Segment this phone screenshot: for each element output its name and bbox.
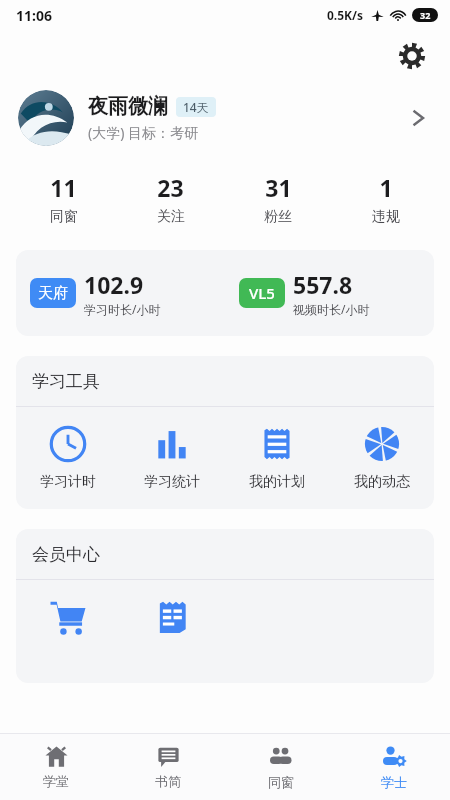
- button[interactable]: 11: [10, 168, 117, 230]
- button[interactable]: 学士: [337, 734, 450, 800]
- button[interactable]: 同窗: [224, 734, 337, 800]
- staticText: 学习计时: [40, 473, 96, 491]
- button[interactable]: 书简: [112, 734, 224, 800]
- button[interactable]: 学习统计: [120, 423, 224, 493]
- button[interactable]: 学堂: [0, 734, 112, 800]
- staticText: 学堂: [43, 773, 69, 789]
- button[interactable]: [16, 596, 120, 667]
- staticText: 关注: [157, 208, 185, 226]
- staticText: 0.5K/s: [327, 7, 364, 23]
- button[interactable]: 我的动态: [329, 423, 434, 493]
- button[interactable]: 学习计时: [16, 423, 120, 493]
- staticText: 14天: [183, 99, 209, 115]
- staticText: 学习工具: [32, 371, 100, 392]
- staticText: 学习时长/小时: [84, 301, 161, 317]
- button[interactable]: 夜雨微澜: [0, 82, 450, 154]
- staticText: 夜雨微澜: [88, 94, 168, 119]
- button[interactable]: 天府: [16, 250, 225, 336]
- staticText: 11: [50, 172, 77, 203]
- other: Open profile: [400, 100, 436, 136]
- staticText: (大学) 目标：考研: [88, 123, 199, 142]
- staticText: 学习统计: [144, 473, 200, 491]
- staticText: 我的计划: [249, 473, 305, 491]
- staticText: 粉丝: [264, 208, 292, 226]
- staticText: 31: [265, 172, 292, 203]
- staticText: 32: [420, 9, 431, 21]
- button[interactable]: [120, 596, 224, 667]
- button[interactable]: 我的计划: [224, 423, 329, 493]
- staticText: 会员中心: [32, 544, 100, 565]
- staticText: 学士: [381, 774, 407, 790]
- button[interactable]: 23: [117, 168, 224, 230]
- staticText: 天府: [38, 284, 68, 303]
- staticText: 102.9: [84, 269, 144, 300]
- staticText: 23: [157, 172, 184, 203]
- button[interactable]: VL5: [225, 250, 434, 336]
- staticText: 同窗: [268, 774, 294, 790]
- button[interactable]: Settings: [392, 36, 432, 76]
- staticText: 视频时长/小时: [293, 301, 370, 317]
- staticText: 11:06: [16, 6, 52, 25]
- staticText: 我的动态: [354, 473, 410, 491]
- button[interactable]: 1: [332, 168, 440, 230]
- staticText: 557.8: [293, 269, 353, 300]
- staticText: 同窗: [50, 208, 78, 226]
- button[interactable]: 31: [224, 168, 332, 230]
- staticText: 1: [379, 172, 393, 203]
- staticText: VL5: [249, 283, 275, 303]
- staticText: 书简: [155, 773, 181, 789]
- staticText: 违规: [372, 208, 400, 226]
